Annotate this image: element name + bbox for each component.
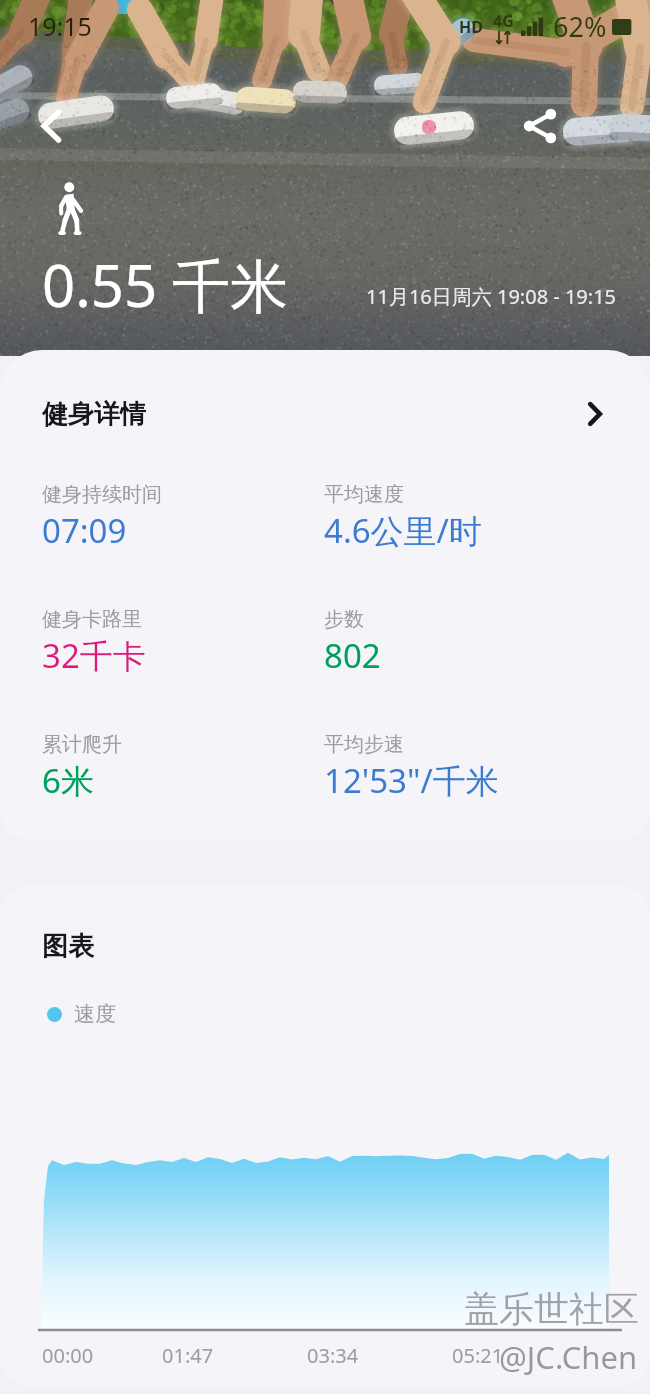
staticText: 速度	[74, 1001, 116, 1027]
staticText: 4G	[493, 10, 514, 32]
staticText: 盖乐世社区	[464, 1287, 639, 1331]
staticText: 健身持续时间	[42, 482, 162, 507]
staticText: 健身卡路里	[42, 607, 142, 632]
staticText: 健身详情	[42, 398, 146, 431]
staticText: 12'53"/千米	[324, 758, 499, 803]
staticText: 03:34	[307, 1342, 359, 1369]
staticText: 62%	[553, 8, 607, 45]
staticText: 07:09	[42, 508, 127, 553]
staticText: 平均步速	[324, 732, 404, 757]
staticText: HD	[459, 16, 483, 38]
staticText: 19:15	[28, 9, 92, 43]
staticText: @JC.Chen	[499, 1336, 638, 1378]
staticText: 11月16日周六 19:08 - 19:15	[366, 283, 617, 310]
staticText: 01:47	[162, 1342, 214, 1369]
staticText: 802	[324, 633, 381, 678]
button[interactable]: 健身详情	[0, 350, 650, 478]
staticText: 4.6公里/时	[324, 508, 482, 553]
staticText: 平均速度	[324, 482, 404, 507]
staticText: 图表	[42, 930, 94, 963]
staticText: 00:00	[42, 1342, 94, 1369]
staticText: 05:21	[452, 1342, 504, 1369]
staticText: 6米	[42, 758, 94, 803]
button[interactable]: Back	[24, 99, 78, 153]
staticText: 累计爬升	[42, 732, 122, 757]
staticText: 步数	[324, 607, 364, 632]
button[interactable]: Share	[513, 99, 567, 153]
staticText: 0.55 千米	[42, 245, 289, 324]
staticText: 32千卡	[42, 633, 146, 678]
